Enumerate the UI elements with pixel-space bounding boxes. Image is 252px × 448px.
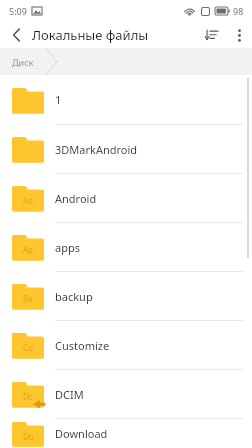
button[interactable]: 1	[0, 75, 252, 124]
staticText: apps	[55, 240, 80, 255]
button[interactable]: Sort	[196, 22, 226, 48]
button[interactable]: Ap	[0, 223, 252, 271]
button[interactable]: More options	[226, 22, 252, 48]
button[interactable]: Диск	[10, 52, 36, 72]
staticText: 98	[233, 5, 244, 17]
button[interactable]: 3DMarkAndroid	[0, 125, 252, 173]
staticText: Android	[55, 191, 97, 206]
staticText: Do	[23, 431, 34, 442]
button[interactable]: Back	[0, 22, 32, 48]
staticText: 3DMarkAndroid	[55, 142, 138, 157]
staticText: backup	[55, 289, 93, 304]
staticText: 1	[55, 92, 62, 107]
staticText: 5:09	[9, 5, 27, 17]
staticText: Локальные файлы	[32, 26, 196, 44]
staticText: Download	[55, 426, 108, 441]
button[interactable]: An	[0, 174, 252, 222]
button[interactable]: Ba	[0, 272, 252, 320]
button[interactable]: Do	[0, 419, 252, 448]
staticText: Ba	[23, 293, 33, 304]
staticText: Ap	[23, 244, 34, 255]
staticText: DCIM	[55, 387, 84, 402]
staticText: Cu	[23, 342, 33, 353]
staticText: An	[23, 195, 34, 206]
staticText: Customize	[55, 338, 110, 353]
staticText: Dc	[23, 391, 33, 402]
button[interactable]: Dc	[0, 370, 252, 418]
button[interactable]: Cu	[0, 321, 252, 369]
staticText: Диск	[12, 56, 34, 68]
